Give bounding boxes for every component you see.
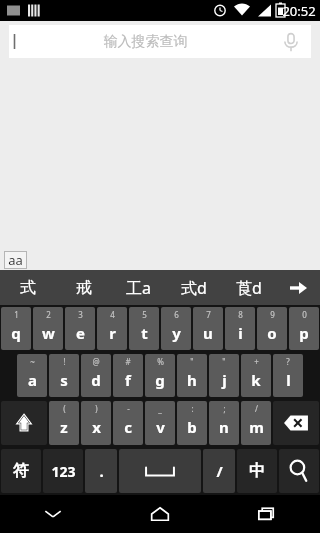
button[interactable]: 符: [1, 449, 41, 493]
staticText: ): [95, 403, 98, 414]
button[interactable]: 式d: [166, 270, 221, 305]
button[interactable]: :: [177, 401, 207, 445]
staticText: (: [63, 403, 66, 414]
button[interactable]: ?: [273, 354, 303, 397]
staticText: +: [254, 356, 259, 367]
staticText: 中: [249, 461, 265, 481]
button[interactable]: 6: [161, 307, 191, 350]
staticText: 5: [142, 309, 147, 320]
button[interactable]: /: [241, 401, 271, 445]
button[interactable]: 工a: [111, 270, 166, 305]
button[interactable]: +: [241, 354, 271, 397]
staticText: f: [125, 370, 131, 390]
staticText: n: [219, 417, 229, 437]
button[interactable]: ): [81, 401, 111, 445]
button[interactable]: !: [49, 354, 79, 397]
button[interactable]: 123: [43, 449, 83, 493]
button[interactable]: .: [85, 449, 117, 493]
staticText: 符: [13, 461, 29, 481]
staticText: s: [60, 370, 68, 390]
staticText: 7: [206, 309, 211, 320]
staticText: _: [158, 403, 162, 414]
staticText: 20:52: [282, 2, 316, 20]
staticText: g: [155, 370, 165, 390]
staticText: j: [222, 370, 227, 390]
staticText: x: [92, 417, 101, 437]
button[interactable]: 中: [237, 449, 277, 493]
staticText: p: [299, 323, 309, 343]
staticText: i: [238, 323, 243, 343]
staticText: c: [124, 417, 132, 437]
staticText: 123: [51, 462, 76, 481]
staticText: -: [127, 403, 130, 414]
button[interactable]: 8: [225, 307, 255, 350]
staticText: ~: [30, 356, 35, 367]
staticText: /: [216, 461, 223, 481]
staticText: 8: [238, 309, 243, 320]
button[interactable]: aa: [8, 251, 23, 269]
button[interactable]: Hide keyboard: [0, 495, 106, 533]
staticText: ?: [286, 356, 290, 367]
staticText: 3: [78, 309, 83, 320]
button[interactable]: 4: [97, 307, 127, 350]
staticText: u: [203, 323, 213, 343]
staticText: @: [92, 356, 100, 367]
staticText: 9: [270, 309, 275, 320]
staticText: a: [28, 370, 37, 390]
staticText: l: [286, 370, 291, 390]
staticText: e: [76, 323, 85, 343]
button[interactable]: 0: [289, 307, 319, 350]
button[interactable]: 2: [33, 307, 63, 350]
staticText: 戒: [76, 278, 92, 298]
button[interactable]: Voice search: [271, 25, 311, 58]
button[interactable]: Recent apps: [213, 495, 320, 533]
staticText: 式: [20, 278, 36, 298]
staticText: %: [157, 356, 164, 367]
button[interactable]: ~: [17, 354, 47, 397]
button[interactable]: @: [81, 354, 111, 397]
button[interactable]: Backspace: [273, 401, 319, 445]
staticText: 1: [14, 309, 19, 320]
staticText: ": [190, 356, 194, 367]
button[interactable]: 输入搜索查询: [9, 25, 311, 58]
staticText: 6: [174, 309, 179, 320]
button[interactable]: 1: [1, 307, 31, 350]
button[interactable]: 戒: [56, 270, 111, 305]
staticText: :: [191, 403, 194, 414]
button[interactable]: More candidates: [276, 270, 320, 305]
staticText: 0: [302, 309, 307, 320]
button[interactable]: 5: [129, 307, 159, 350]
staticText: q: [11, 323, 21, 343]
button[interactable]: 9: [257, 307, 287, 350]
staticText: 工a: [126, 277, 151, 299]
button[interactable]: #: [113, 354, 143, 397]
button[interactable]: 莨d: [221, 270, 276, 305]
button[interactable]: ;: [209, 401, 239, 445]
button[interactable]: -: [113, 401, 143, 445]
staticText: 4: [110, 309, 115, 320]
button[interactable]: Search: [279, 449, 319, 493]
staticText: b: [187, 417, 197, 437]
button[interactable]: ": [209, 354, 239, 397]
staticText: ;: [223, 403, 226, 414]
staticText: aa: [8, 251, 23, 269]
staticText: !: [63, 356, 66, 367]
staticText: /: [255, 403, 258, 414]
staticText: v: [156, 417, 165, 437]
button[interactable]: %: [145, 354, 175, 397]
button[interactable]: 式: [0, 270, 56, 305]
button[interactable]: 3: [65, 307, 95, 350]
button[interactable]: _: [145, 401, 175, 445]
staticText: h: [187, 370, 197, 390]
button[interactable]: Space: [119, 449, 201, 493]
staticText: 式d: [181, 277, 207, 299]
button[interactable]: Shift: [1, 401, 47, 445]
staticText: y: [172, 323, 181, 343]
button[interactable]: 7: [193, 307, 223, 350]
button[interactable]: (: [49, 401, 79, 445]
staticText: 莨d: [236, 277, 262, 299]
button[interactable]: Home: [106, 495, 213, 533]
staticText: .: [99, 461, 104, 481]
button[interactable]: ": [177, 354, 207, 397]
button[interactable]: /: [203, 449, 235, 493]
